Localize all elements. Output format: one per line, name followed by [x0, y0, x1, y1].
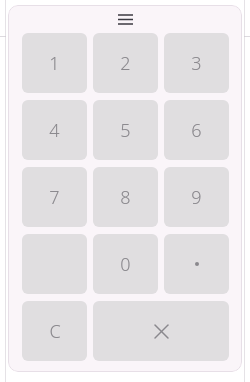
button[interactable]: Multiply [93, 301, 229, 361]
button[interactable] [164, 234, 229, 294]
button[interactable]: 2 [93, 33, 158, 93]
button[interactable]: 6 [164, 100, 229, 160]
button[interactable]: 3 [164, 33, 229, 93]
staticText: 1 [49, 51, 60, 76]
staticText: 8 [120, 185, 131, 210]
button[interactable]: 1 [22, 33, 87, 93]
staticText: 5 [120, 118, 131, 143]
staticText: 7 [49, 185, 60, 210]
button[interactable]: 0 [93, 234, 158, 294]
staticText: 2 [120, 51, 131, 76]
button[interactable]: 8 [93, 167, 158, 227]
staticText: 0 [120, 252, 131, 277]
staticText: 4 [49, 118, 60, 143]
button[interactable]: 5 [93, 100, 158, 160]
button[interactable]: Menu [112, 9, 138, 29]
staticText: 9 [191, 185, 202, 210]
button[interactable]: 9 [164, 167, 229, 227]
button[interactable]: C [22, 301, 87, 361]
staticText: 3 [191, 51, 202, 76]
button[interactable]: 7 [22, 167, 87, 227]
button[interactable]: 4 [22, 100, 87, 160]
staticText: C [49, 319, 61, 344]
staticText: 6 [191, 118, 202, 143]
